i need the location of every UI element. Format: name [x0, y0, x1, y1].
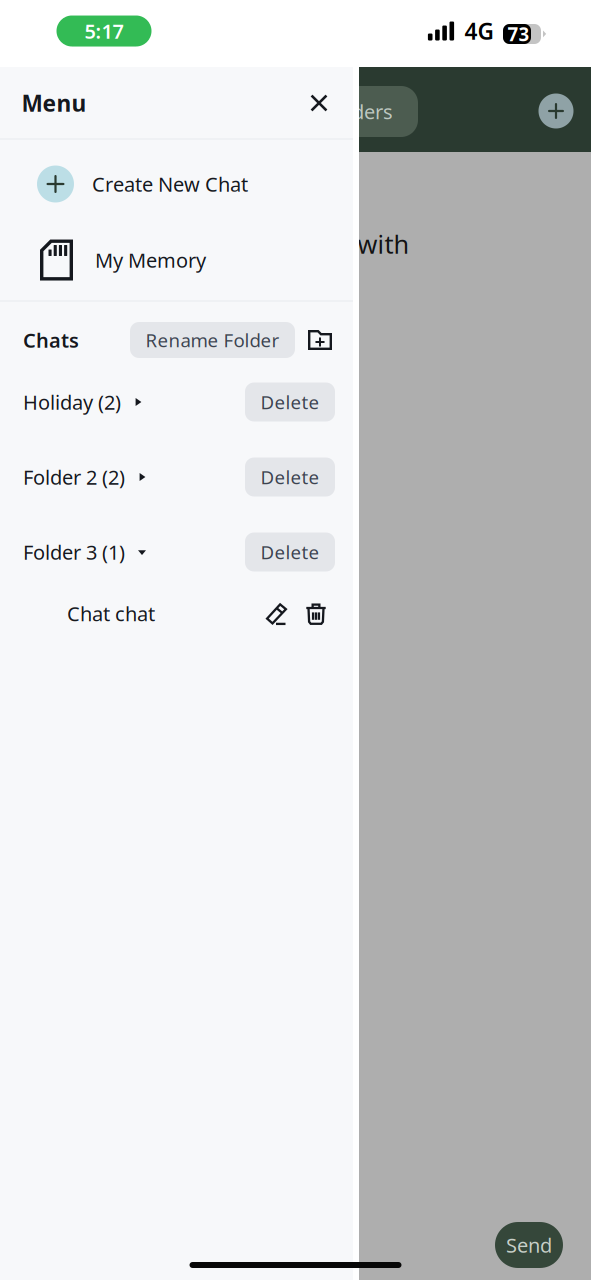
- staticText: Delete: [260, 390, 319, 414]
- staticText: My Memory: [95, 247, 206, 273]
- button[interactable]: New chat: [534, 89, 578, 133]
- button[interactable]: Delete: [245, 382, 335, 421]
- staticText: Menu: [21, 88, 86, 118]
- button[interactable]: Rename Folder: [130, 322, 295, 358]
- staticText: Send: [506, 1232, 552, 1258]
- staticText: Folder 2 (2): [23, 464, 125, 490]
- button[interactable]: Delete: [245, 532, 335, 571]
- button[interactable]: Folder 3 (1): [23, 528, 146, 576]
- button[interactable]: New folder: [308, 330, 332, 350]
- staticText: 73: [507, 22, 529, 46]
- button[interactable]: My Memory: [0, 225, 359, 295]
- staticText: 4G: [464, 16, 493, 46]
- staticText: Delete: [260, 465, 319, 489]
- staticText: Holiday (2): [23, 389, 121, 415]
- staticText: Chat chat: [67, 600, 155, 627]
- button[interactable]: Close menu: [297, 81, 341, 125]
- button[interactable]: Send: [495, 1222, 563, 1268]
- button[interactable]: Folders: [300, 86, 418, 137]
- staticText: Create New Chat: [92, 171, 248, 197]
- button[interactable]: Delete chat: [299, 596, 333, 630]
- button[interactable]: Rename chat: [260, 596, 294, 630]
- staticText: Rename Folder: [145, 328, 279, 352]
- button[interactable]: Create New Chat: [0, 149, 359, 219]
- staticText: Chats: [23, 327, 79, 353]
- staticText: Folder 3 (1): [23, 539, 125, 565]
- button[interactable]: Folder 2 (2): [23, 453, 146, 501]
- staticText: Hi! How can I help you with: [80, 227, 409, 261]
- staticText: Folders: [325, 98, 393, 125]
- button[interactable]: Delete: [245, 457, 335, 496]
- staticText: Delete: [260, 540, 319, 564]
- button[interactable]: Holiday (2): [23, 378, 142, 426]
- staticText: 5:17: [84, 18, 123, 44]
